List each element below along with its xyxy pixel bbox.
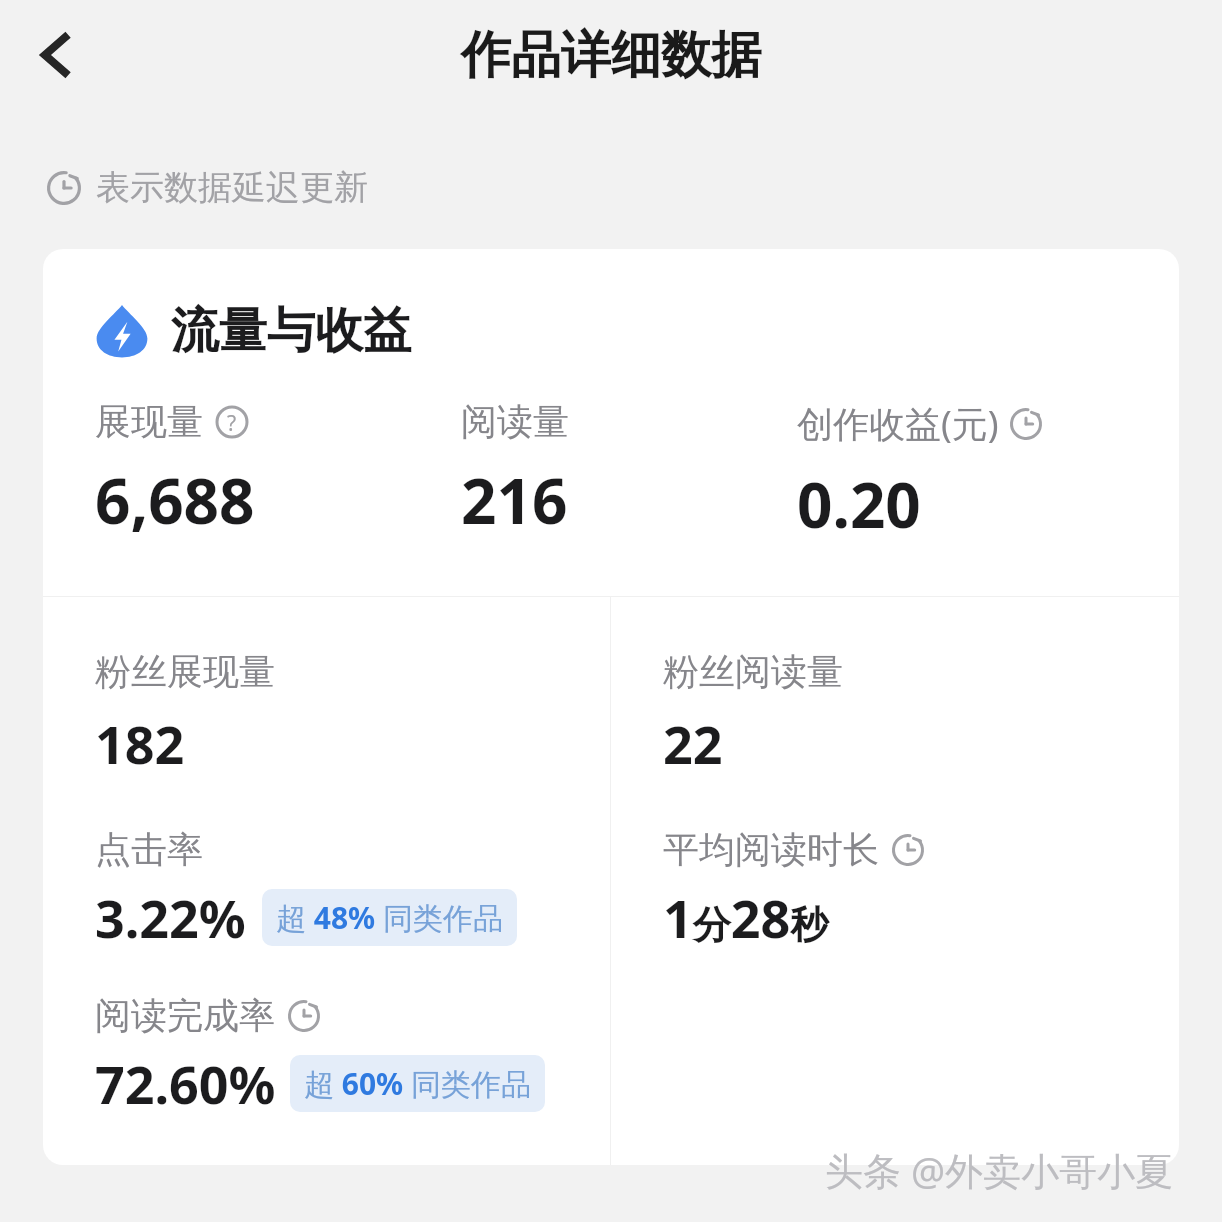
staticText: 3.22% xyxy=(95,882,246,953)
staticText: 表示数据延迟更新 xyxy=(96,166,368,209)
button[interactable]: 超 60% 同类作品 xyxy=(290,1055,545,1112)
staticText: 阅读完成率 xyxy=(95,993,275,1038)
staticText: 粉丝阅读量 xyxy=(663,649,843,694)
staticText: 超 60% 同类作品 xyxy=(304,1063,531,1104)
staticText: 展现量 xyxy=(95,399,203,444)
staticText: 点击率 xyxy=(95,827,203,872)
staticText: 头条 @外卖小哥小夏 xyxy=(825,1144,1174,1196)
button[interactable]: Back xyxy=(0,0,110,110)
button[interactable]: 超 48% 同类作品 xyxy=(262,889,517,946)
staticText: 6,688 xyxy=(95,458,255,542)
staticText: 超 48% 同类作品 xyxy=(276,897,503,938)
staticText: ? xyxy=(227,408,237,437)
staticText: 流量与收益 xyxy=(171,301,411,361)
staticText: 粉丝展现量 xyxy=(95,649,275,694)
staticText: 1分28秒 xyxy=(663,882,829,953)
staticText: 作品详细数据 xyxy=(461,24,761,87)
staticText: 创作收益(元) xyxy=(797,399,999,448)
staticText: 22 xyxy=(663,708,723,779)
staticText: 216 xyxy=(461,458,568,542)
staticText: 72.60% xyxy=(95,1048,276,1119)
staticText: 0.20 xyxy=(797,462,921,546)
staticText: 182 xyxy=(95,708,185,779)
staticText: 阅读量 xyxy=(461,399,569,444)
staticText: 平均阅读时长 xyxy=(663,827,879,872)
